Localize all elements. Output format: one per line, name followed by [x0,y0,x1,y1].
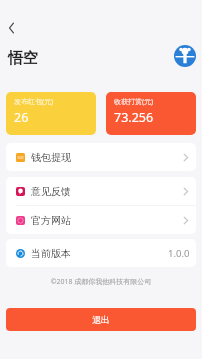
button[interactable]: 发布红包(元) [6,92,96,135]
button[interactable]: 官方网站 [6,206,196,234]
staticText: 1.0.0 [168,247,190,260]
staticText: 悟空 [8,49,38,68]
staticText: 官方网站 [31,214,71,227]
staticText: ©2018 成都你我他科技有限公司 [0,277,202,287]
button[interactable]: Profile [174,45,196,67]
button[interactable]: 当前版本 [6,239,196,267]
button[interactable]: 退出 [6,308,196,331]
staticText: 73.256 [114,109,154,126]
staticText: 意见反馈 [31,185,71,198]
staticText: 当前版本 [31,247,71,260]
staticText: 收获打赏(元) [114,97,154,107]
button[interactable]: Back [2,18,22,38]
button[interactable]: 意见反馈 [6,177,196,205]
staticText: 26 [14,109,29,126]
staticText: 退出 [92,314,110,325]
staticText: 发布红包(元) [14,97,54,107]
button[interactable]: 收获打赏(元) [106,92,196,135]
staticText: 钱包提现 [31,151,71,164]
button[interactable]: 钱包提现 [6,143,196,171]
